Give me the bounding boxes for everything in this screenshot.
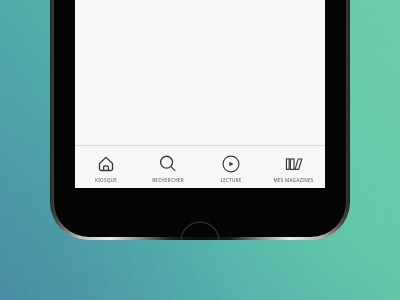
button[interactable]: KIOSQUE: [75, 151, 137, 183]
staticText: KIOSQUE: [95, 177, 117, 183]
staticText: LECTURE: [220, 177, 242, 183]
staticText: RECHERCHER: [152, 177, 184, 183]
button[interactable]: MES MAGAZINES: [262, 151, 325, 183]
button[interactable]: Home: [180, 221, 220, 240]
button[interactable]: RECHERCHER: [137, 151, 199, 183]
staticText: MES MAGAZINES: [273, 177, 314, 183]
button[interactable]: LECTURE: [199, 151, 262, 183]
